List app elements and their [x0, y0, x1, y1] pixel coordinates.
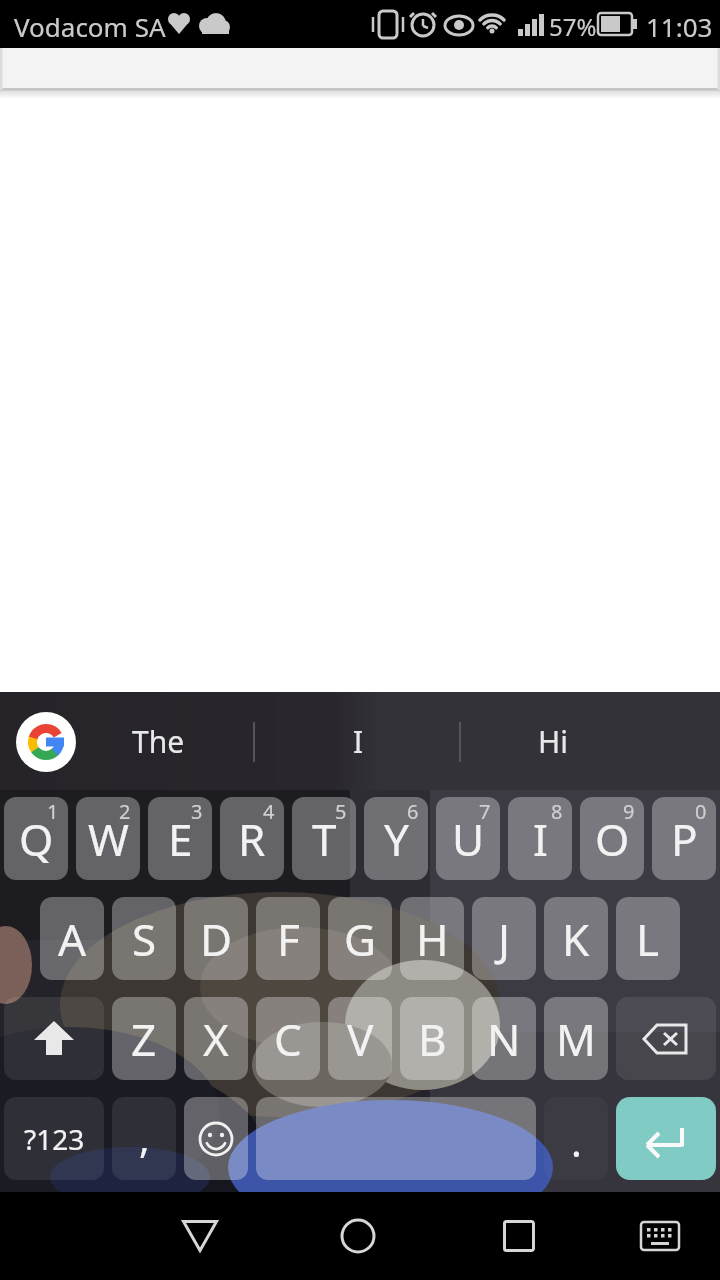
- staticText: F: [277, 909, 300, 969]
- staticText: ?123: [24, 1120, 85, 1158]
- staticText: 57%: [549, 10, 597, 43]
- button[interactable]: J: [472, 897, 536, 980]
- button[interactable]: Q: [4, 797, 68, 880]
- button[interactable]: N: [472, 997, 536, 1080]
- button[interactable]: [160, 1196, 240, 1276]
- button[interactable]: Y: [364, 797, 428, 880]
- button[interactable]: [318, 1196, 398, 1276]
- button[interactable]: ?123: [4, 1097, 104, 1180]
- staticText: Z: [131, 1009, 157, 1069]
- staticText: X: [203, 1009, 229, 1069]
- staticText: C: [274, 1009, 302, 1069]
- staticText: Vodacom SA: [14, 9, 166, 44]
- staticText: .: [571, 1114, 582, 1168]
- button[interactable]: X: [184, 997, 248, 1080]
- staticText: P: [671, 809, 698, 869]
- button[interactable]: E: [148, 797, 212, 880]
- button[interactable]: T: [292, 797, 356, 880]
- staticText: T: [312, 809, 337, 869]
- staticText: 4: [263, 798, 275, 825]
- staticText: J: [498, 909, 511, 969]
- button[interactable]: .: [544, 1097, 608, 1180]
- button[interactable]: The: [100, 712, 216, 770]
- button[interactable]: Hi: [495, 712, 611, 770]
- staticText: B: [418, 1009, 447, 1069]
- button[interactable]: S: [112, 897, 176, 980]
- staticText: Hi: [538, 721, 568, 762]
- button[interactable]: G: [328, 897, 392, 980]
- button[interactable]: U: [436, 797, 500, 880]
- staticText: 3: [191, 798, 203, 825]
- staticText: D: [200, 909, 233, 969]
- staticText: E: [168, 809, 193, 869]
- staticText: V: [347, 1009, 374, 1069]
- button[interactable]: ,: [112, 1097, 176, 1180]
- button[interactable]: H: [400, 897, 464, 980]
- button[interactable]: M: [544, 997, 608, 1080]
- button[interactable]: P: [652, 797, 716, 880]
- staticText: 0: [695, 798, 707, 825]
- button[interactable]: B: [400, 997, 464, 1080]
- staticText: 9: [623, 798, 635, 825]
- button[interactable]: [616, 1097, 716, 1180]
- staticText: S: [132, 909, 157, 969]
- staticText: 7: [479, 798, 491, 825]
- staticText: Y: [384, 809, 409, 869]
- button[interactable]: I: [300, 712, 416, 770]
- button[interactable]: [616, 997, 716, 1080]
- button[interactable]: [0, 48, 720, 91]
- button[interactable]: V: [328, 997, 392, 1080]
- button[interactable]: L: [616, 897, 680, 980]
- button[interactable]: Z: [112, 997, 176, 1080]
- staticText: 5: [335, 798, 347, 825]
- staticText: A: [58, 909, 87, 969]
- button[interactable]: [256, 1097, 536, 1180]
- staticText: M: [556, 1009, 596, 1069]
- staticText: I: [533, 809, 548, 869]
- button[interactable]: [184, 1097, 248, 1180]
- button[interactable]: I: [508, 797, 572, 880]
- staticText: I: [353, 721, 364, 762]
- staticText: ,: [139, 1110, 150, 1164]
- button[interactable]: W: [76, 797, 140, 880]
- button[interactable]: O: [580, 797, 644, 880]
- staticText: W: [88, 809, 129, 869]
- staticText: L: [636, 909, 660, 969]
- button[interactable]: A: [40, 897, 104, 980]
- staticText: 11:03: [646, 9, 713, 44]
- staticText: H: [416, 909, 449, 969]
- staticText: Q: [19, 809, 54, 869]
- staticText: O: [595, 809, 630, 869]
- staticText: 2: [119, 798, 131, 825]
- staticText: 6: [407, 798, 419, 825]
- button[interactable]: R: [220, 797, 284, 880]
- staticText: 8: [551, 798, 563, 825]
- staticText: K: [562, 909, 590, 969]
- button[interactable]: [479, 1196, 559, 1276]
- staticText: G: [344, 909, 377, 969]
- button[interactable]: [620, 1196, 700, 1276]
- button[interactable]: D: [184, 897, 248, 980]
- staticText: R: [238, 809, 266, 869]
- button[interactable]: [4, 997, 104, 1080]
- button[interactable]: K: [544, 897, 608, 980]
- staticText: U: [452, 809, 485, 869]
- staticText: 1: [47, 798, 59, 825]
- button[interactable]: C: [256, 997, 320, 1080]
- button[interactable]: F: [256, 897, 320, 980]
- staticText: N: [487, 1009, 521, 1069]
- staticText: The: [132, 721, 185, 762]
